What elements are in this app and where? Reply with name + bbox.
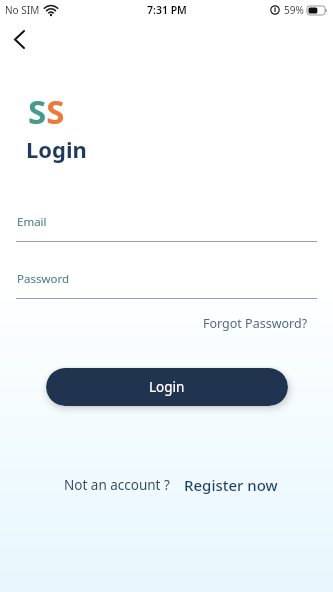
button[interactable]: Login xyxy=(46,368,288,406)
staticText: Login xyxy=(26,134,87,164)
staticText: Password xyxy=(17,271,70,287)
staticText: No SIM xyxy=(5,3,40,17)
staticText: Email xyxy=(17,214,47,230)
button[interactable] xyxy=(6,26,32,52)
button[interactable]: Forgot Password? xyxy=(228,315,333,332)
staticText: 59% xyxy=(284,3,304,17)
staticText: SS xyxy=(28,89,65,134)
button[interactable]: Register now xyxy=(184,475,278,495)
staticText: Login xyxy=(149,378,185,396)
staticText: Not an account ? xyxy=(64,476,170,494)
staticText: 7:31 PM xyxy=(147,3,187,17)
